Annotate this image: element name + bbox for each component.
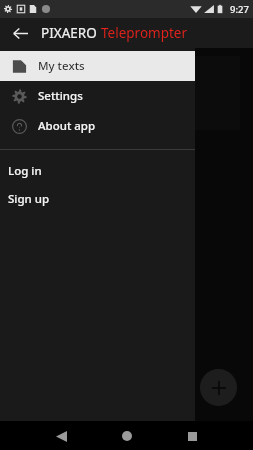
button[interactable]: Welcome text and — [14, 56, 240, 130]
staticText: PIXAERO — [41, 24, 101, 42]
button[interactable]: Settings — [0, 81, 195, 111]
staticText: Sign up — [8, 191, 50, 207]
button[interactable]: Log in — [0, 157, 195, 185]
button[interactable]: Back — [47, 422, 75, 450]
button[interactable]: About app — [0, 111, 195, 141]
staticText: My texts — [38, 58, 85, 74]
staticText: Teleprompter — [101, 24, 188, 42]
button[interactable]: Recents — [178, 422, 206, 450]
staticText: Log in — [8, 163, 42, 179]
button[interactable]: Home — [113, 422, 141, 450]
staticText: Settings — [38, 88, 83, 104]
button[interactable]: Back — [8, 21, 32, 45]
staticText: info about our app. — [24, 94, 124, 109]
button[interactable]: My texts — [0, 51, 195, 81]
staticText: Welcome text and — [24, 72, 117, 87]
staticText: 9:27 — [230, 3, 249, 16]
button[interactable]: Add — [200, 369, 237, 406]
button[interactable]: Sign up — [0, 185, 195, 213]
staticText: About app — [38, 118, 96, 134]
